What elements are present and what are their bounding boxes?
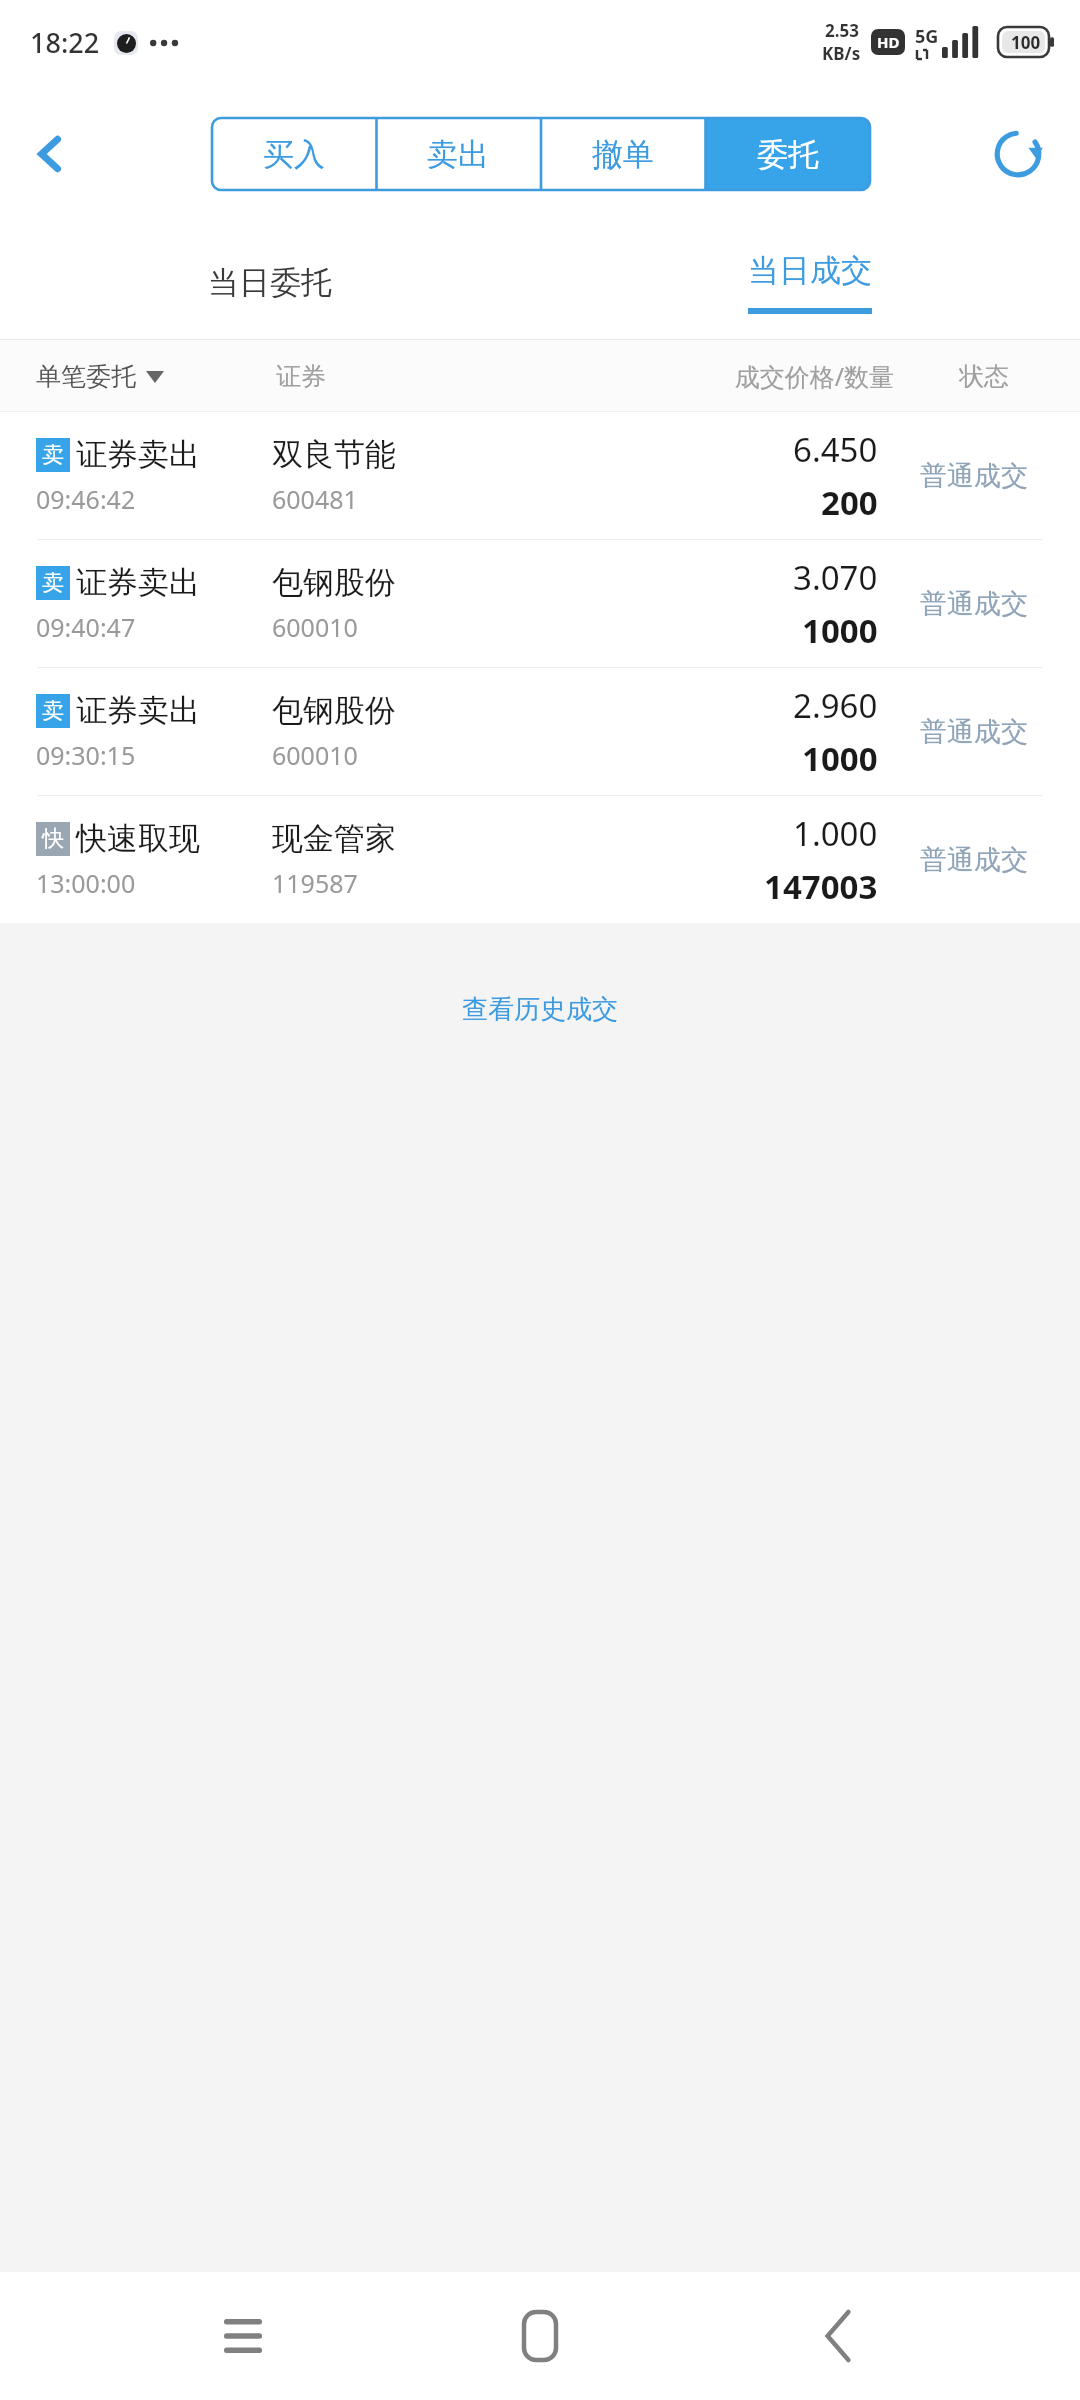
staticText: 6.450: [793, 427, 878, 472]
staticText: 包钢股份: [272, 691, 396, 730]
staticText: 卖出: [427, 135, 489, 174]
staticText: 147003: [764, 864, 878, 909]
staticText: 当日成交: [748, 251, 872, 290]
staticText: 普通成交: [920, 587, 1028, 621]
staticText: 单笔委托: [36, 361, 136, 392]
staticText: 委托: [757, 135, 819, 174]
staticText: 2.53: [825, 19, 859, 42]
button[interactable]: Recents: [188, 2281, 298, 2391]
button[interactable]: Back: [8, 112, 92, 196]
button[interactable]: 卖: [0, 668, 1080, 795]
button[interactable]: 卖: [0, 412, 1080, 539]
button[interactable]: 买入: [212, 118, 376, 190]
staticText: 当日委托: [208, 263, 332, 302]
staticText: 查看历史成交: [462, 993, 618, 1026]
staticText: 买入: [263, 135, 325, 174]
staticText: 18:22: [30, 24, 100, 61]
staticText: 证券卖出: [76, 691, 200, 730]
staticText: 600010: [272, 738, 358, 772]
staticText: 证券卖出: [76, 563, 200, 602]
staticText: 1.000: [793, 811, 878, 856]
staticText: 卖: [42, 569, 64, 597]
staticText: 快速取现: [76, 819, 200, 858]
staticText: 100: [1011, 31, 1041, 54]
staticText: 09:30:15: [36, 738, 136, 772]
staticText: 5G: [915, 24, 939, 49]
button[interactable]: 撤单: [540, 118, 705, 190]
button[interactable]: 单笔委托: [36, 361, 276, 392]
staticText: 119587: [272, 866, 358, 900]
staticText: 3.070: [793, 555, 878, 600]
staticText: KB/s: [822, 42, 861, 65]
staticText: 状态: [924, 361, 1044, 392]
staticText: 证券卖出: [76, 435, 200, 474]
staticText: 普通成交: [920, 715, 1028, 749]
staticText: 09:40:47: [36, 610, 136, 644]
staticText: 09:46:42: [36, 482, 136, 516]
staticText: 快: [42, 825, 64, 853]
staticText: 成交价格/数量: [516, 359, 894, 393]
button[interactable]: 委托: [705, 118, 870, 190]
button[interactable]: Home: [485, 2281, 595, 2391]
staticText: 卖: [42, 697, 64, 725]
button[interactable]: 卖出: [376, 118, 540, 190]
button[interactable]: 卖: [0, 540, 1080, 667]
staticText: 13:00:00: [36, 866, 136, 900]
staticText: 证券: [276, 361, 516, 392]
button[interactable]: Back: [783, 2281, 893, 2391]
staticText: 卖: [42, 441, 64, 469]
button[interactable]: Refresh: [974, 110, 1062, 198]
staticText: 200: [821, 480, 878, 525]
staticText: 撤单: [592, 135, 654, 174]
staticText: 600010: [272, 610, 358, 644]
button[interactable]: 快: [0, 796, 1080, 923]
staticText: 1000: [802, 736, 878, 781]
staticText: 现金管家: [272, 819, 396, 858]
staticText: 普通成交: [920, 459, 1028, 493]
button[interactable]: 当日成交: [540, 224, 1080, 340]
staticText: 普通成交: [920, 843, 1028, 877]
button[interactable]: 查看历史成交: [438, 983, 642, 1036]
button[interactable]: 当日委托: [0, 224, 540, 340]
staticText: HD: [877, 32, 900, 52]
staticText: 600481: [272, 482, 358, 516]
staticText: 2.960: [793, 683, 878, 728]
staticText: 包钢股份: [272, 563, 396, 602]
staticText: 1000: [802, 608, 878, 653]
staticText: 双良节能: [272, 435, 396, 474]
